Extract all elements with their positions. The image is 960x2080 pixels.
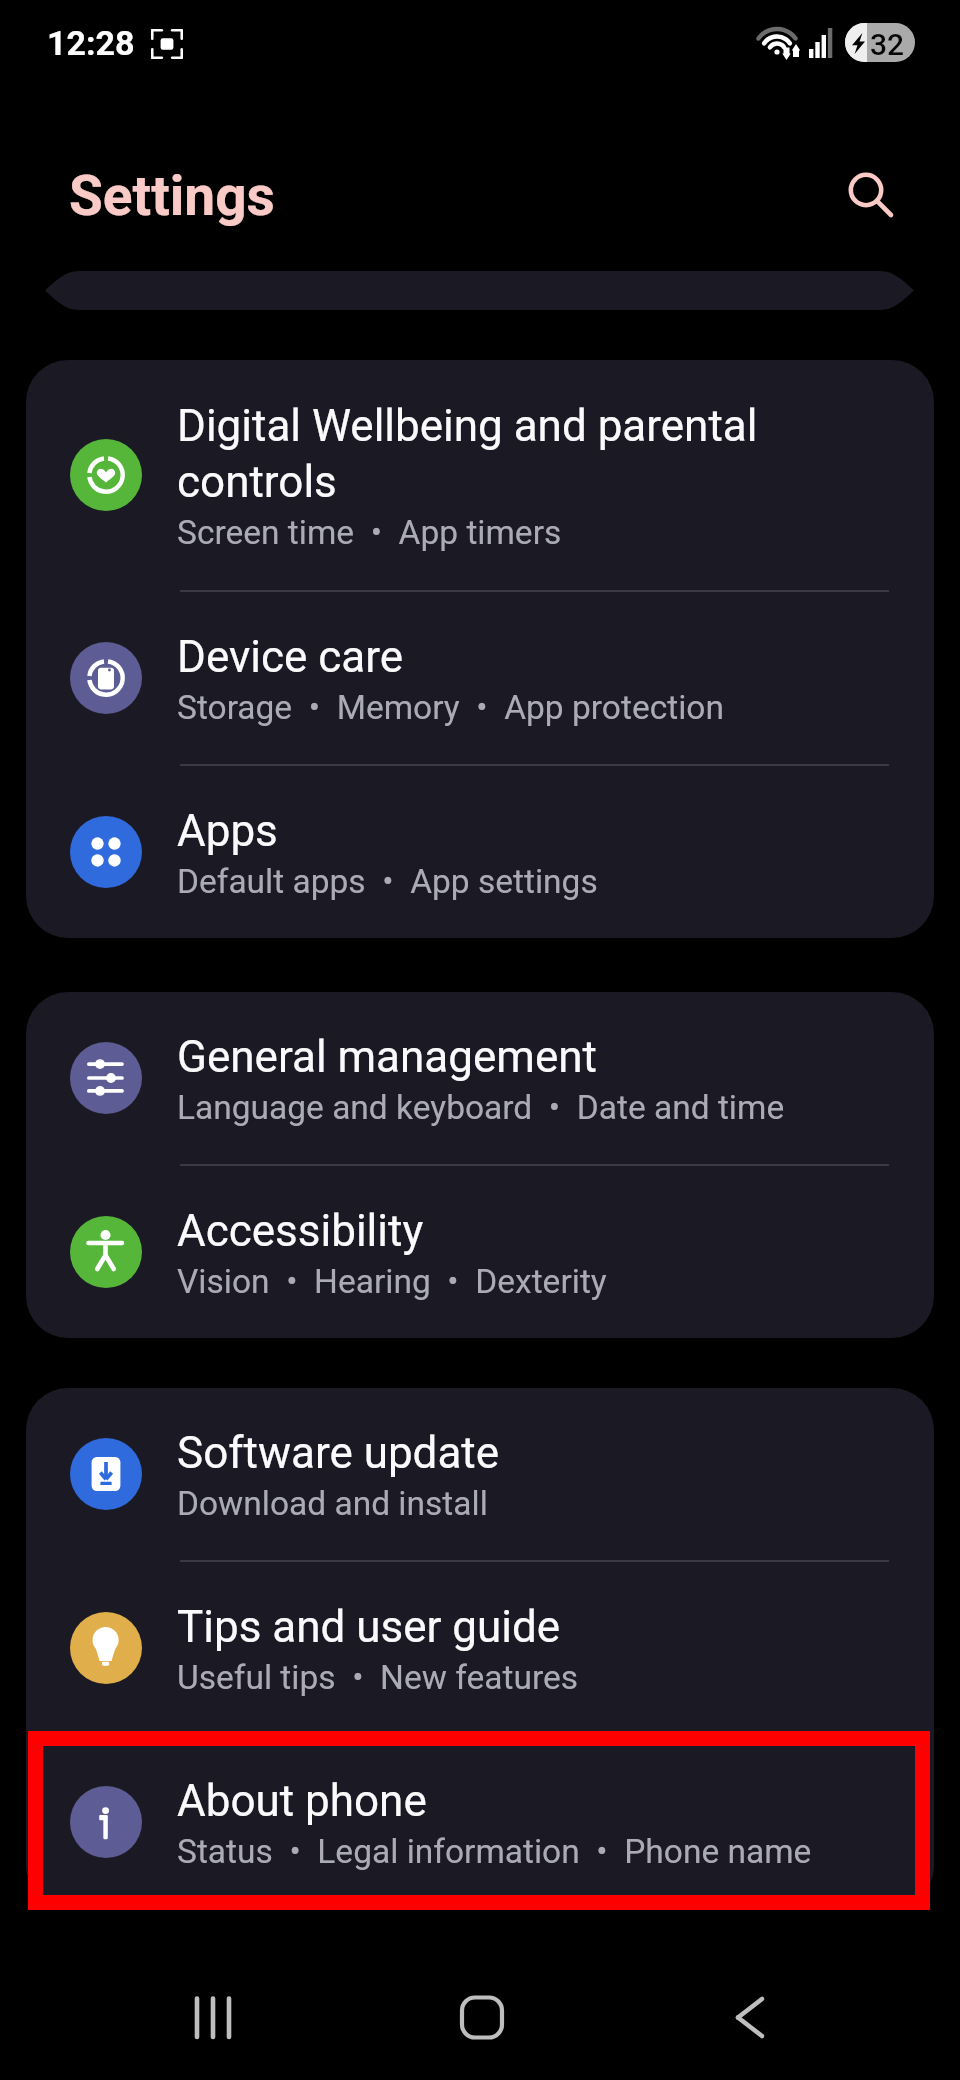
button[interactable]: Search settings [45,271,914,310]
staticText: Tips and user guide [177,1598,917,1654]
button[interactable]: Search [818,142,914,238]
staticText: Useful tips • New features [177,1654,579,1698]
staticText: Vision • Hearing • Dexterity [177,1258,607,1302]
button[interactable]: Tips and user guide [26,1562,934,1734]
staticText: Settings [69,164,275,228]
staticText: Digital Wellbeing and parental controls [177,397,777,509]
button[interactable]: General management [26,992,934,1164]
staticText: 12:28 [47,23,135,63]
button[interactable]: Digital Wellbeing and parental controls [26,360,934,590]
button[interactable]: Recent apps [133,1958,293,2078]
staticText: Storage • Memory • App protection [177,684,724,728]
staticText: Software update [177,1424,917,1480]
staticText: About phone [177,1772,917,1828]
staticText: Download and install [177,1480,488,1524]
button[interactable]: Apps [26,766,934,938]
staticText: Status • Legal information • Phone name [177,1828,812,1872]
staticText: 32 [870,27,905,62]
staticText: Apps [177,802,917,858]
staticText: Device care [177,628,917,684]
staticText: General management [177,1028,917,1084]
button[interactable]: Back [670,1958,830,2078]
button[interactable]: Software update [26,1388,934,1560]
staticText: Default apps • App settings [177,858,598,902]
button[interactable]: Accessibility [26,1166,934,1338]
button[interactable]: Device care [26,592,934,764]
button[interactable]: About phone [26,1736,934,1908]
staticText: Screen time • App timers [177,509,562,553]
button[interactable]: Home [402,1958,562,2078]
staticText: Language and keyboard • Date and time [177,1084,785,1128]
staticText: Accessibility [177,1202,917,1258]
